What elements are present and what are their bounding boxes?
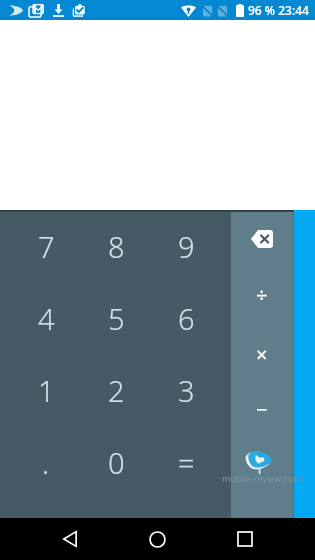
staticText: 96 % 23:44 — [248, 2, 309, 18]
button[interactable]: 1 — [11, 354, 81, 426]
staticText: 3 — [178, 371, 195, 410]
button[interactable]: 3 — [151, 354, 221, 426]
button[interactable]: 9 — [151, 210, 221, 282]
button[interactable]: 0 — [81, 426, 151, 498]
button[interactable]: 6 — [151, 282, 221, 354]
staticText: mobile-review.com — [222, 472, 302, 484]
staticText: ÷ — [256, 281, 268, 308]
staticText: − — [256, 396, 268, 423]
button[interactable]: Back — [49, 518, 91, 560]
staticText: 1 — [38, 371, 55, 410]
button[interactable]: 2 — [81, 354, 151, 426]
staticText: 6 — [178, 299, 195, 338]
button[interactable]: = — [151, 426, 221, 498]
button[interactable]: Recents — [224, 518, 266, 560]
button[interactable]: ÷ — [231, 274, 293, 314]
staticText: 4 — [38, 299, 55, 338]
staticText: 5 — [108, 299, 125, 338]
staticText: 8 — [108, 227, 125, 266]
button[interactable]: Home — [136, 518, 178, 560]
button[interactable]: Backspace — [231, 219, 293, 259]
button[interactable]: × — [231, 334, 293, 374]
staticText: 7 — [38, 227, 55, 266]
button[interactable]: . — [11, 426, 81, 498]
staticText: × — [256, 341, 268, 368]
button[interactable]: − — [231, 389, 293, 429]
button[interactable]: 4 — [11, 282, 81, 354]
button[interactable]: 5 — [81, 282, 151, 354]
staticText: 2 — [108, 371, 125, 410]
staticText: = — [178, 443, 195, 482]
button[interactable]: 8 — [81, 210, 151, 282]
staticText: . — [42, 443, 50, 482]
button[interactable]: 7 — [11, 210, 81, 282]
staticText: 9 — [178, 227, 195, 266]
staticText: 0 — [108, 443, 125, 482]
